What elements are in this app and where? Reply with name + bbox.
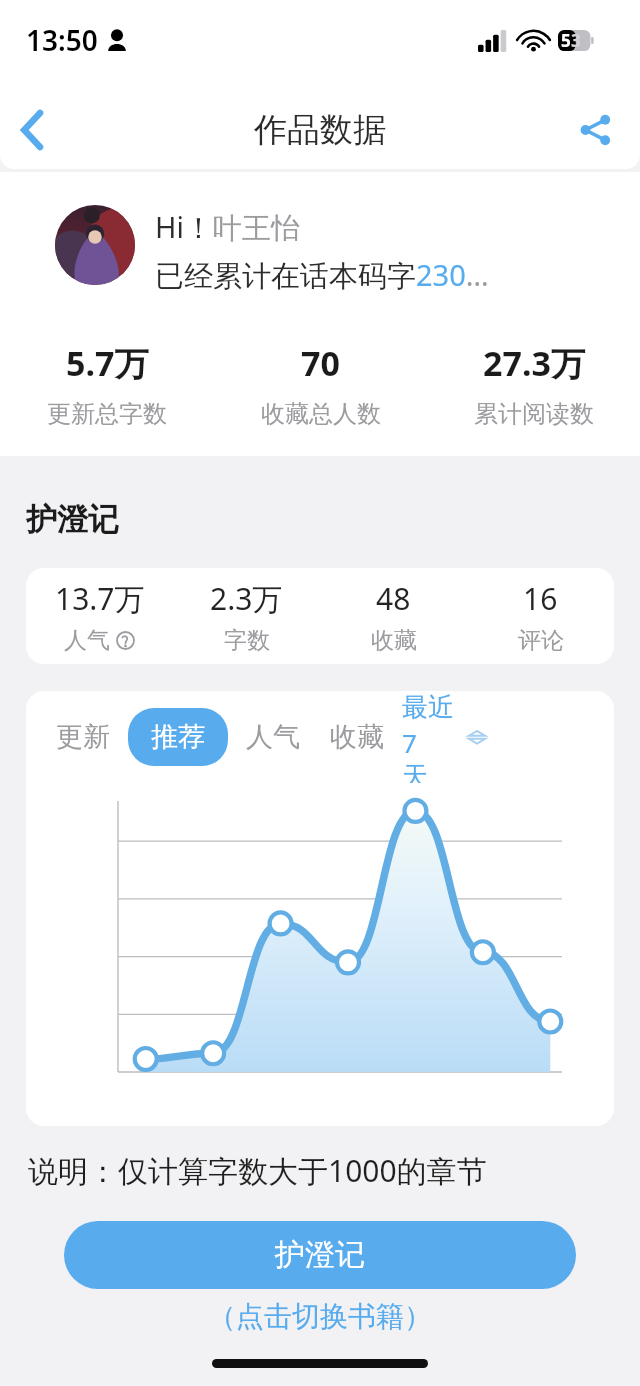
button[interactable]: 13.7万 (26, 578, 173, 655)
button[interactable]: 人气 (242, 708, 304, 766)
staticText: 收藏 (330, 720, 384, 754)
button[interactable]: 27.3万 (427, 340, 640, 429)
staticText: 13.7万 (55, 578, 145, 619)
staticText: （点击切换书籍） (208, 1299, 432, 1334)
button[interactable]: 16 (467, 578, 614, 655)
staticText: Hi！叶王怡 (155, 207, 300, 247)
button[interactable] (55, 205, 135, 285)
staticText: 字数 (224, 626, 270, 655)
button[interactable]: 推荐 (128, 708, 228, 766)
staticText: 3 (571, 29, 581, 52)
staticText: 70 (301, 340, 340, 386)
button[interactable]: 48 (320, 578, 467, 655)
staticText: 已经累计在话本码字230… (155, 255, 489, 295)
staticText: 48 (376, 578, 411, 619)
staticText: 人气 (246, 720, 300, 754)
staticText: 5.7万 (66, 340, 149, 386)
staticText: 人气 (64, 626, 110, 655)
staticText: 作品数据 (254, 109, 386, 151)
button[interactable]: 5.7万 (0, 340, 214, 429)
button[interactable]: 护澄记 (64, 1221, 576, 1289)
staticText: 收藏 (371, 626, 417, 655)
button[interactable]: （点击切换书籍） (0, 1299, 640, 1334)
staticText: 更新总字数 (47, 399, 167, 429)
staticText: 27.3万 (483, 340, 585, 386)
staticText: 收藏总人数 (261, 399, 381, 429)
button[interactable]: 更新 (52, 708, 114, 766)
staticText: 累计阅读数 (474, 399, 594, 429)
staticText: 天 (402, 760, 428, 783)
staticText: 护澄记 (26, 500, 119, 539)
staticText: 更新 (56, 720, 110, 754)
button[interactable]: 70 (214, 340, 427, 429)
staticText: 最近7 (402, 691, 468, 760)
button[interactable]: 最近7 (402, 691, 486, 783)
staticText: 16 (523, 578, 558, 619)
staticText: 5 (561, 29, 571, 52)
button[interactable]: Back (0, 97, 66, 163)
staticText: 护澄记 (275, 1236, 365, 1274)
staticText: 推荐 (151, 720, 205, 754)
button[interactable]: 2.3万 (173, 578, 320, 655)
button[interactable]: 收藏 (326, 708, 388, 766)
staticText: 评论 (518, 626, 564, 655)
staticText: 2.3万 (210, 578, 283, 619)
button[interactable]: Share (564, 99, 626, 161)
staticText: 13:50 (26, 21, 98, 59)
staticText: 说明：仅计算字数大于1000的章节 (28, 1150, 640, 1191)
